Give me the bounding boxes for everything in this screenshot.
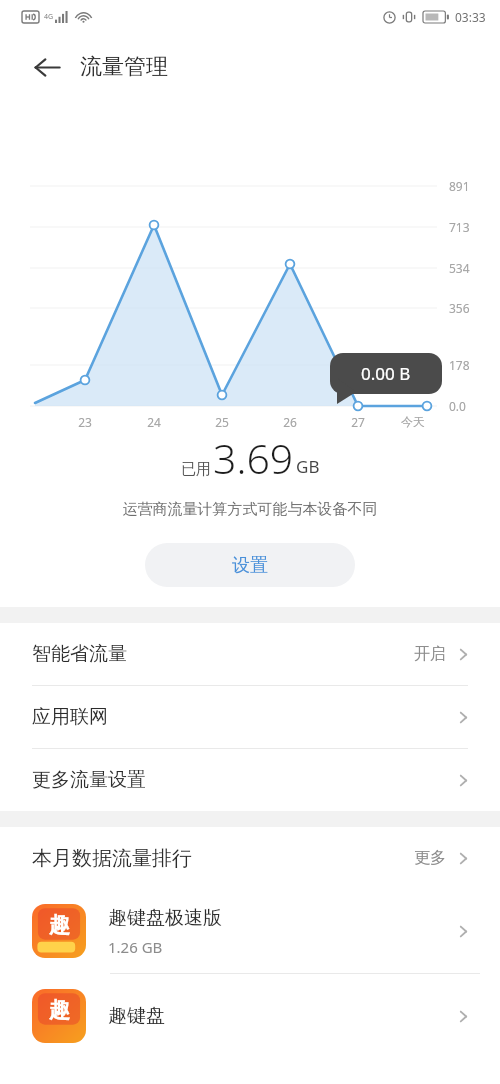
- staticText: 趣: [49, 912, 70, 938]
- button[interactable]: 更多流量设置: [0, 749, 500, 811]
- staticText: 运营商流量计算方式可能与本设备不同: [0, 500, 500, 519]
- button[interactable]: 趣: [32, 889, 472, 973]
- staticText: 0.00 B: [361, 362, 411, 385]
- button[interactable]: 趣: [32, 974, 472, 1058]
- staticText: 本月数据流量排行: [32, 846, 192, 871]
- button[interactable]: Back: [25, 45, 69, 89]
- staticText: 趣: [49, 997, 70, 1023]
- button[interactable]: 智能省流量: [0, 623, 500, 686]
- staticText: 0.0: [449, 398, 466, 414]
- staticText: 开启: [414, 644, 446, 664]
- staticText: 27: [342, 414, 374, 430]
- staticText: 1.26 GB: [108, 937, 163, 957]
- staticText: 应用联网: [32, 705, 108, 729]
- staticText: 流量管理: [80, 53, 168, 81]
- staticText: 24: [138, 414, 170, 430]
- button[interactable]: 设置: [145, 543, 355, 587]
- staticText: 设置: [232, 554, 268, 577]
- button[interactable]: 本月数据流量排行: [32, 827, 472, 889]
- staticText: 25: [206, 414, 238, 430]
- staticText: 趣键盘: [108, 1004, 165, 1028]
- staticText: 更多流量设置: [32, 768, 146, 792]
- staticText: 26: [274, 414, 306, 430]
- button[interactable]: 应用联网: [0, 686, 500, 749]
- staticText: 713: [449, 219, 470, 235]
- staticText: 今天: [397, 414, 429, 429]
- staticText: 534: [449, 260, 470, 276]
- staticText: 356: [449, 300, 470, 316]
- staticText: 智能省流量: [32, 642, 127, 666]
- staticText: 4G: [44, 12, 54, 22]
- staticText: 已用: [181, 460, 211, 479]
- staticText: 更多: [414, 848, 446, 868]
- staticText: GB: [296, 455, 320, 478]
- staticText: 趣键盘极速版: [108, 906, 222, 930]
- staticText: 03:33: [455, 9, 486, 25]
- staticText: 23: [69, 414, 101, 430]
- staticText: 891: [449, 178, 470, 194]
- staticText: 178: [449, 357, 470, 373]
- staticText: 3.69: [213, 430, 294, 486]
